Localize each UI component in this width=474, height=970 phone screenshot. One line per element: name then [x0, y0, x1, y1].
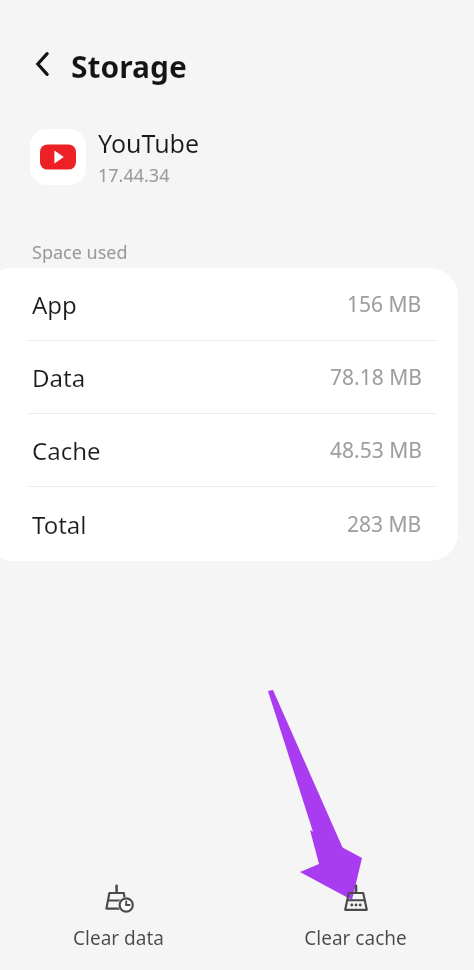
- staticText: Clear data: [73, 925, 164, 951]
- staticText: 17.44.34: [98, 163, 170, 188]
- button[interactable]: Total: [0, 487, 458, 561]
- staticText: Space used: [32, 240, 128, 265]
- staticText: App: [32, 288, 77, 321]
- button[interactable]: Clear data: [0, 865, 237, 970]
- staticText: Storage: [71, 46, 187, 87]
- button[interactable]: Clear cache: [237, 865, 474, 970]
- staticText: 283 MB: [347, 510, 422, 539]
- staticText: YouTube: [98, 126, 200, 160]
- staticText: 156 MB: [347, 290, 422, 319]
- button[interactable]: Cache: [0, 414, 458, 486]
- button[interactable]: App: [0, 268, 458, 340]
- staticText: Cache: [32, 434, 101, 467]
- staticText: Data: [32, 361, 86, 394]
- button[interactable]: Back: [22, 43, 64, 85]
- button[interactable]: YouTube: [30, 122, 290, 192]
- staticText: 48.53 MB: [330, 436, 422, 465]
- staticText: Total: [32, 508, 87, 541]
- staticText: Clear cache: [304, 925, 407, 951]
- button[interactable]: Data: [0, 341, 458, 413]
- staticText: 78.18 MB: [330, 363, 422, 392]
